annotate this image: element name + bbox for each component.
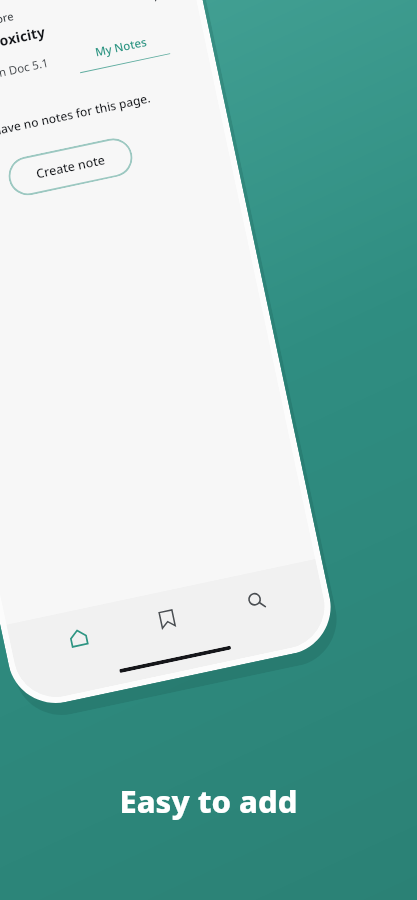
button[interactable]: Search (228, 573, 283, 628)
staticText: Companion Doc 5.1 (0, 55, 50, 92)
button[interactable]: My Notes (67, 28, 177, 75)
staticText: Opioid Toxicity (0, 16, 74, 68)
staticText: My Notes (94, 34, 149, 60)
button[interactable]: Create note (5, 135, 136, 199)
button[interactable]: Bookmark (143, 0, 176, 8)
staticText: Easy to add (0, 780, 417, 822)
button[interactable]: Home (51, 611, 106, 665)
staticText: You have no notes for this page. (0, 76, 216, 157)
button[interactable]: Companion Doc 5.1 (0, 50, 71, 97)
button[interactable]: Bookmarks (139, 592, 194, 646)
staticText: PCP Core (0, 0, 69, 44)
staticText: Create note (34, 151, 106, 182)
